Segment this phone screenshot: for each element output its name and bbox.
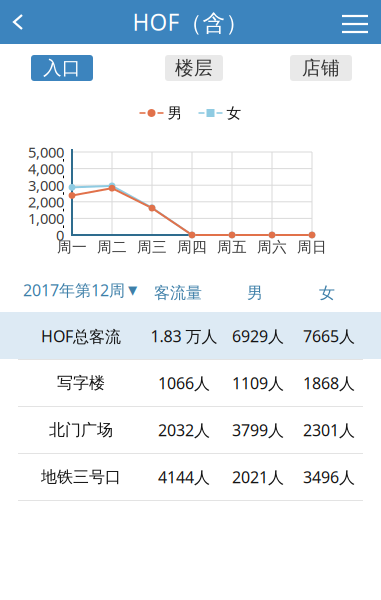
- staticText: 女: [319, 283, 335, 303]
- button[interactable]: 北门广场: [0, 406, 381, 453]
- button[interactable]: Menu: [331, 2, 379, 46]
- staticText: 3799人: [232, 419, 284, 441]
- staticText: 周三: [137, 238, 167, 256]
- staticText: 1109人: [232, 372, 284, 394]
- button[interactable]: 写字楼: [0, 359, 381, 406]
- staticText: 楼层: [175, 56, 213, 79]
- staticText: 0: [56, 225, 64, 245]
- staticText: 2301人: [303, 419, 355, 441]
- staticText: 1868人: [303, 372, 355, 394]
- button[interactable]: 地铁三号口: [0, 453, 381, 500]
- staticText: 2,000: [28, 192, 64, 212]
- button[interactable]: Back: [0, 0, 36, 44]
- staticText: 周四: [177, 238, 207, 256]
- button[interactable]: 楼层: [165, 55, 223, 81]
- staticText: 周日: [297, 238, 327, 256]
- staticText: 男: [167, 104, 182, 122]
- staticText: HOF（含）: [132, 7, 248, 37]
- staticText: 客流量: [154, 283, 202, 303]
- staticText: ▼: [128, 283, 137, 297]
- staticText: 1.83 万人: [150, 325, 217, 347]
- button[interactable]: 店铺: [290, 55, 352, 81]
- staticText: 男: [247, 283, 263, 303]
- staticText: HOF总客流: [41, 325, 121, 347]
- staticText: 2021人: [232, 466, 284, 488]
- staticText: 2017年第12周: [23, 279, 125, 301]
- staticText: 3,000: [28, 175, 64, 195]
- staticText: 入口: [43, 56, 81, 79]
- staticText: 7665人: [303, 325, 355, 347]
- staticText: 地铁三号口: [41, 467, 121, 487]
- button[interactable]: HOF总客流: [0, 312, 381, 359]
- staticText: 5,000: [28, 142, 64, 162]
- staticText: 周五: [217, 238, 247, 256]
- button[interactable]: 入口: [31, 55, 93, 81]
- staticText: 周六: [257, 238, 287, 256]
- staticText: 北门广场: [49, 420, 113, 440]
- staticText: 6929人: [232, 325, 284, 347]
- staticText: 周一: [57, 238, 87, 256]
- staticText: 4,000: [28, 159, 64, 178]
- staticText: 1,000: [28, 209, 64, 228]
- staticText: 店铺: [302, 56, 340, 79]
- staticText: 4144人: [158, 466, 210, 488]
- staticText: 写字楼: [57, 373, 105, 393]
- staticText: 周二: [97, 238, 127, 256]
- staticText: 女: [226, 104, 241, 122]
- staticText: 1066人: [158, 372, 210, 394]
- staticText: 2032人: [158, 419, 210, 441]
- button[interactable]: 2017年第12周: [18, 276, 142, 304]
- staticText: 3496人: [303, 466, 355, 488]
